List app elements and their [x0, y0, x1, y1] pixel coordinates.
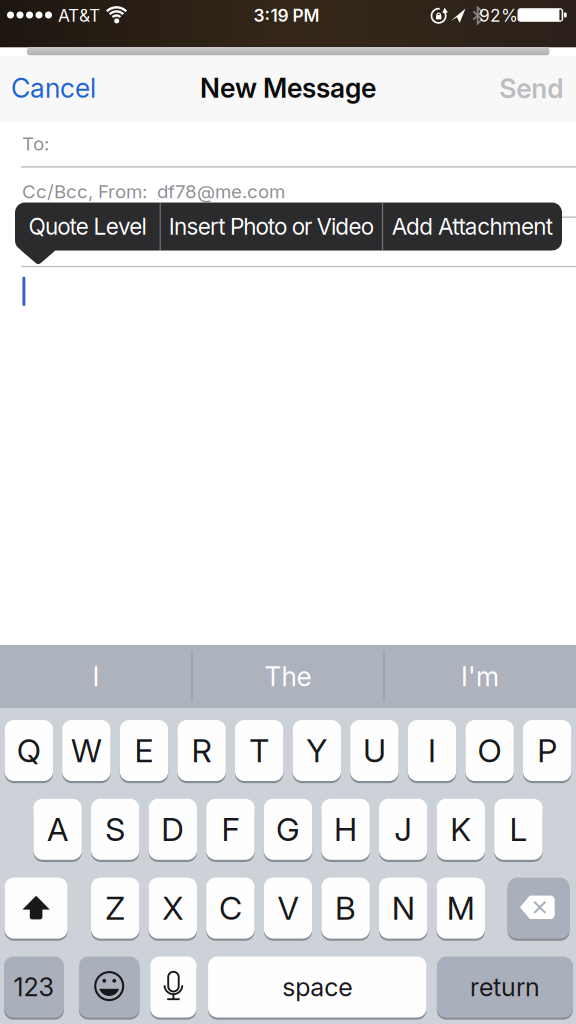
staticText: To:	[22, 133, 49, 155]
button[interactable]: The	[193, 645, 383, 708]
button[interactable]: space	[208, 956, 427, 1017]
button[interactable]: I'm	[385, 645, 575, 708]
button[interactable]: D	[149, 799, 197, 860]
button[interactable]: Quote Level	[16, 202, 160, 250]
staticText: Q	[17, 732, 41, 769]
button[interactable]: N	[379, 878, 427, 939]
button[interactable]: T	[235, 720, 283, 781]
button[interactable]	[508, 878, 570, 939]
staticText: R	[192, 732, 212, 769]
button[interactable]: P	[523, 720, 571, 781]
button[interactable]: V	[264, 878, 312, 939]
button[interactable]: W	[62, 720, 111, 781]
staticText: T	[249, 732, 269, 769]
staticText: I	[428, 732, 436, 769]
button[interactable]: To:	[0, 122, 576, 166]
staticText: Cc/Bcc, From: df78@me.com	[22, 180, 285, 202]
staticText: space	[282, 972, 352, 1002]
button[interactable]: U	[350, 720, 399, 781]
staticText: E	[134, 732, 153, 769]
button[interactable]: O	[465, 720, 514, 781]
staticText: Send	[499, 73, 563, 104]
staticText: Add Attachment	[392, 213, 553, 240]
staticText: B	[335, 889, 356, 927]
staticText: C	[219, 889, 242, 927]
staticText: D	[161, 810, 184, 848]
staticText: V	[277, 889, 298, 927]
staticText: 123	[13, 972, 54, 1002]
button[interactable]: Y	[293, 720, 341, 781]
staticText: 92%	[479, 5, 518, 26]
staticText: Z	[105, 889, 125, 927]
button[interactable]: L	[494, 799, 543, 860]
staticText: G	[276, 810, 300, 848]
button[interactable]: return	[437, 956, 573, 1017]
staticText: O	[478, 732, 502, 769]
staticText: 3:19 PM	[253, 5, 319, 26]
staticText: X	[162, 889, 183, 927]
button[interactable]: F	[206, 799, 255, 860]
staticText: N	[392, 889, 415, 927]
button[interactable]: E	[120, 720, 168, 781]
button[interactable]: Insert Photo or Video	[161, 202, 382, 250]
button[interactable]: A	[33, 799, 82, 860]
staticText: K	[450, 810, 471, 848]
button[interactable]: K	[437, 799, 485, 860]
button[interactable]: H	[321, 799, 370, 860]
staticText: M	[447, 889, 475, 927]
button[interactable]: I	[1, 645, 191, 708]
staticText: I'm	[461, 661, 499, 692]
button[interactable]: Cc/Bcc, From: df78@me.com	[0, 167, 576, 216]
staticText: W	[71, 732, 102, 769]
staticText: I	[92, 661, 99, 692]
button[interactable]: R	[177, 720, 226, 781]
staticText: S	[105, 810, 125, 848]
staticText: Insert Photo or Video	[169, 213, 374, 240]
staticText: return	[470, 972, 540, 1002]
staticText: L	[509, 810, 527, 848]
button[interactable]: Z	[91, 878, 139, 939]
staticText: AT&T	[58, 5, 100, 26]
button[interactable]: M	[437, 878, 485, 939]
button[interactable]: X	[149, 878, 197, 939]
button[interactable]: J	[379, 799, 427, 860]
button[interactable]: C	[206, 878, 255, 939]
button[interactable]: Add Attachment	[383, 202, 561, 250]
button[interactable]: Q	[5, 720, 53, 781]
button[interactable]: B	[321, 878, 370, 939]
staticText: Quote Level	[29, 213, 147, 240]
staticText: H	[334, 810, 357, 848]
button[interactable]	[5, 878, 68, 939]
staticText: P	[537, 732, 557, 769]
button[interactable]: 123	[4, 956, 64, 1017]
staticText: F	[221, 810, 239, 848]
button[interactable]	[150, 956, 196, 1017]
staticText: U	[363, 732, 386, 769]
staticText: New Message	[200, 72, 376, 104]
staticText: The	[264, 661, 311, 692]
button[interactable]: I	[408, 720, 456, 781]
button[interactable]: Cancel	[11, 72, 96, 104]
staticText: A	[47, 810, 68, 848]
button[interactable]	[79, 956, 139, 1017]
staticText: J	[394, 810, 412, 848]
staticText: Y	[306, 732, 327, 769]
button[interactable]: Send	[499, 73, 563, 104]
button[interactable]: G	[264, 799, 312, 860]
button[interactable]	[0, 268, 576, 645]
staticText: Cancel	[11, 72, 96, 104]
button[interactable]: S	[91, 799, 139, 860]
